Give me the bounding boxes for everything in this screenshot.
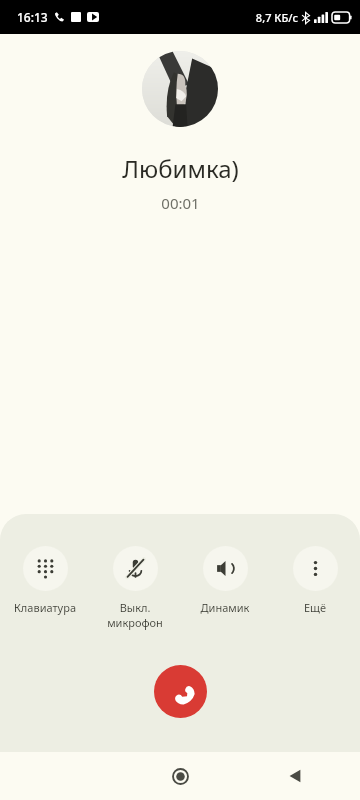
- staticText: 16:13: [17, 9, 48, 25]
- other: Speaker: [203, 546, 248, 591]
- staticText: 00:01: [161, 193, 200, 213]
- button[interactable]: End call: [154, 665, 207, 718]
- staticText: 8,7 КБ/с: [255, 10, 298, 25]
- button[interactable]: Home: [161, 757, 199, 795]
- button[interactable]: Speaker: [180, 544, 270, 617]
- staticText: Выкл. микрофон: [90, 600, 180, 630]
- staticText: Любимка): [122, 152, 239, 185]
- button[interactable]: Dialpad: [0, 544, 90, 617]
- button[interactable]: Back: [276, 757, 314, 795]
- other: Mute microphone: [113, 546, 158, 591]
- staticText: Ещё: [270, 600, 360, 615]
- staticText: Клавиатура: [0, 600, 90, 615]
- other: Contact photo: [142, 51, 218, 127]
- other: More options: [293, 546, 338, 591]
- other: Dialpad: [23, 546, 68, 591]
- button[interactable]: More options: [270, 544, 360, 617]
- staticText: Динамик: [180, 600, 270, 615]
- button[interactable]: Mute microphone: [90, 544, 180, 632]
